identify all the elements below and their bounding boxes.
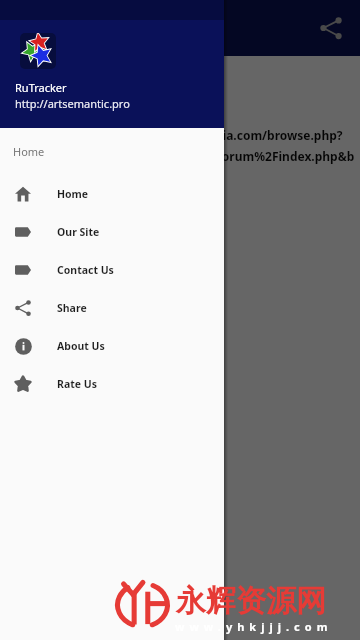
button[interactable]: Share xyxy=(0,289,224,327)
button[interactable]: Home xyxy=(0,175,224,213)
staticText: f=&nm=&o=1&s=2&tm=-1&url=%2Fforum%2Finde… xyxy=(11,148,360,164)
button[interactable]: Share xyxy=(313,10,349,46)
staticText: About Us xyxy=(57,339,105,353)
staticText: 永辉资源网 xyxy=(176,582,326,620)
staticText: Home xyxy=(13,144,45,159)
button[interactable]: Rate Us xyxy=(0,365,224,403)
staticText: Rate Us xyxy=(57,377,97,391)
button[interactable]: Our Site xyxy=(0,213,224,251)
staticText: www.yhkjjj.com xyxy=(175,619,333,634)
staticText: Home xyxy=(57,187,89,201)
staticText: Contact Us xyxy=(57,263,114,277)
staticText: http://artsemantic.pro xyxy=(15,96,130,111)
button[interactable]: Contact Us xyxy=(0,251,224,289)
button[interactable]: About Us xyxy=(0,327,224,365)
staticText: RuTracker xyxy=(15,80,67,95)
staticText: Our Site xyxy=(57,225,100,239)
staticText: https://rutracker.org.translator.ninjia.… xyxy=(11,127,343,143)
staticText: Share xyxy=(57,301,87,315)
